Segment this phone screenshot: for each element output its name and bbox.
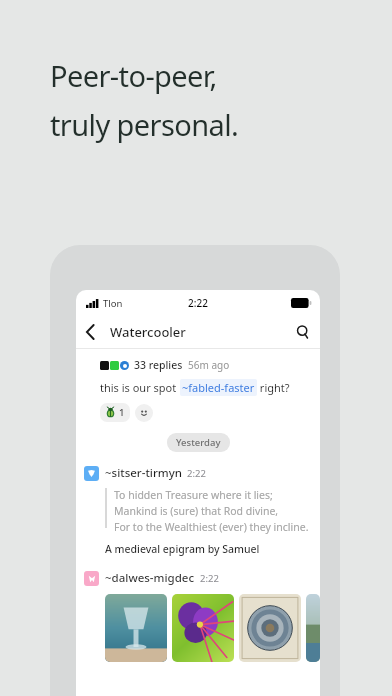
staticText: 2:22 — [187, 467, 206, 480]
staticText: 2:22 — [200, 572, 219, 585]
staticText: right? — [257, 380, 290, 395]
button[interactable]: Photo of a purple flower — [172, 594, 234, 662]
staticText: Mankind is (sure) that Rod divine, — [114, 504, 279, 518]
staticText: ~sitser-tirmyn — [105, 465, 182, 481]
staticText: 1 — [119, 406, 125, 419]
staticText: Yesterday — [176, 436, 221, 449]
staticText: To hidden Treasure where it lies; — [114, 488, 273, 502]
button[interactable]: Back — [76, 321, 101, 343]
staticText: truly personal. — [50, 105, 239, 144]
staticText: Peer-to-peer, — [50, 56, 217, 95]
staticText: 56m ago — [188, 358, 230, 372]
staticText: this is our spot — [100, 380, 180, 395]
staticText: 33 replies — [134, 358, 183, 372]
staticText: ~fabled-faster — [182, 380, 255, 395]
button[interactable]: Add reaction — [135, 404, 153, 422]
staticText: For to the Wealthiest (ever) they inclin… — [114, 520, 309, 534]
button[interactable]: 1 — [100, 403, 130, 422]
staticText: Tlon — [103, 297, 123, 310]
staticText: A medieval epigram by Samuel Sheppard — [105, 542, 310, 556]
button[interactable]: Photo of a coastline — [306, 594, 320, 662]
button[interactable]: Search — [288, 321, 320, 343]
staticText: 2:22 — [188, 296, 208, 310]
button[interactable]: Photo of a circular illustration — [239, 594, 301, 662]
staticText: ~dalwes-migdec — [105, 570, 195, 586]
staticText: Watercooler — [110, 323, 186, 341]
button[interactable]: Photo of a glass goblet — [105, 594, 167, 662]
